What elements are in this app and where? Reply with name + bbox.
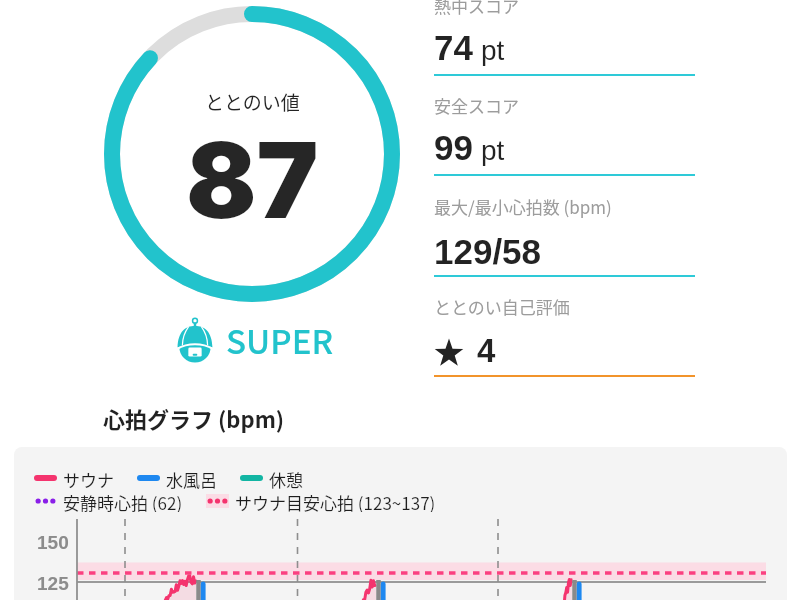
staticText: 125: [37, 573, 69, 594]
staticText: 安静時心拍 (62): [63, 490, 183, 512]
staticText: 150: [37, 532, 69, 553]
button[interactable]: 休憩: [240, 467, 303, 489]
staticText: 熱中スコア: [434, 0, 519, 18]
staticText: 74: [434, 28, 473, 67]
staticText: ととのい自己評価: [434, 294, 570, 319]
staticText: ととのい値: [205, 88, 300, 116]
other: SUPER rank icon: [177, 317, 213, 361]
staticText: 水風呂: [166, 467, 217, 489]
staticText: サウナ目安心拍 (123~137): [235, 490, 436, 512]
button[interactable]: 安静時心拍 (62): [34, 490, 183, 512]
staticText: サウナ: [63, 467, 114, 489]
button[interactable]: 水風呂: [137, 467, 217, 489]
staticText: pt: [481, 35, 505, 66]
staticText: 99: [434, 128, 473, 167]
staticText: 最大/最小心拍数 (bpm): [434, 194, 612, 219]
staticText: 129/58: [434, 232, 542, 271]
staticText: 87: [186, 117, 319, 243]
button[interactable]: SUPER rank icon: [177, 316, 334, 362]
button[interactable]: 安全スコア: [434, 92, 695, 192]
button[interactable]: ととのい値: [104, 6, 400, 302]
staticText: pt: [481, 135, 505, 166]
staticText: 休憩: [269, 467, 303, 489]
button[interactable]: サウナ: [34, 467, 114, 489]
button[interactable]: ととのい自己評価: [434, 293, 695, 393]
button[interactable]: サウナ目安心拍 (123~137): [206, 490, 436, 512]
staticText: SUPER: [226, 316, 334, 362]
button[interactable]: 熱中スコア: [434, 0, 695, 92]
staticText: 心拍グラフ (bpm): [103, 402, 285, 434]
staticText: 安全スコア: [434, 93, 519, 118]
staticText: 4: [477, 332, 496, 369]
button[interactable]: 最大/最小心拍数 (bpm): [434, 193, 695, 293]
